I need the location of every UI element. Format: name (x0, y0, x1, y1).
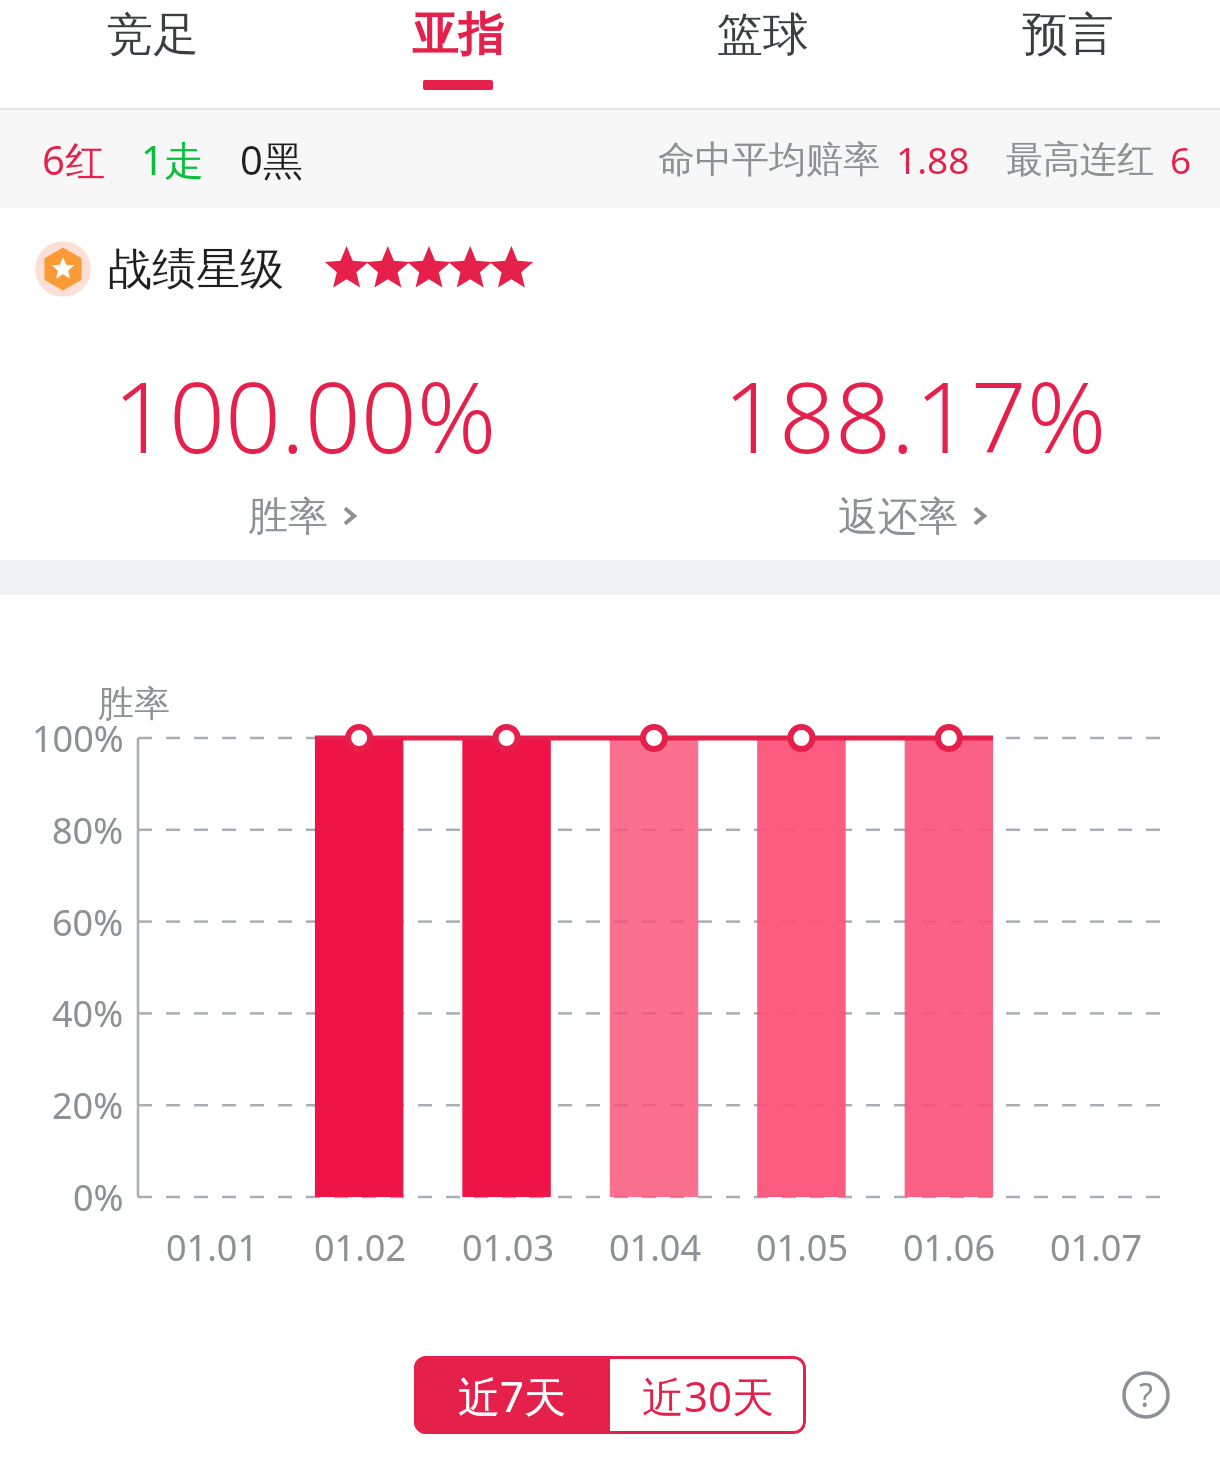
staticText: 100% (32, 714, 124, 763)
staticText: 20% (52, 1081, 124, 1130)
staticText: 竞足 (107, 6, 199, 64)
staticText: 0% (73, 1173, 124, 1222)
staticText: 胜率 (248, 491, 328, 541)
staticText: 80% (52, 806, 124, 855)
staticText: 188.17% (723, 348, 1107, 481)
staticText: 01.06 (903, 1223, 996, 1272)
staticText: 01.07 (1050, 1223, 1143, 1272)
staticText: 6红 (42, 132, 105, 187)
button[interactable]: 188.17% (610, 330, 1220, 560)
staticText: 40% (52, 989, 124, 1038)
staticText: 战绩星级 (108, 242, 284, 297)
staticText: 命中平均赔率 (658, 136, 880, 183)
staticText: 01.02 (314, 1223, 407, 1272)
staticText: 60% (52, 898, 124, 947)
button[interactable]: 近7天 (414, 1356, 610, 1434)
staticText: 近30天 (642, 1367, 775, 1424)
button[interactable]: 100.00% (0, 330, 610, 560)
staticText: 篮球 (717, 6, 809, 64)
button[interactable]: 竞足 (0, 0, 305, 108)
staticText: 最高连红 (1006, 136, 1154, 183)
staticText: 01.01 (166, 1223, 259, 1272)
staticText: 0黑 (240, 132, 303, 187)
button[interactable]: 亚指 (305, 0, 610, 108)
staticText: 01.03 (462, 1223, 555, 1272)
staticText: ? (1139, 1373, 1153, 1417)
staticText: 01.05 (756, 1223, 849, 1272)
staticText: 6 (1170, 134, 1192, 184)
staticText: 1.88 (896, 134, 970, 184)
staticText: 01.04 (609, 1223, 702, 1272)
button[interactable]: 篮球 (610, 0, 915, 108)
staticText: 胜率 (98, 681, 170, 726)
button[interactable]: Help (1122, 1371, 1170, 1419)
staticText: 近7天 (458, 1367, 567, 1424)
button[interactable]: 近30天 (610, 1356, 806, 1434)
staticText: 1走 (141, 132, 204, 187)
staticText: 100.00% (113, 348, 497, 481)
staticText: 亚指 (412, 6, 504, 64)
staticText: 返还率 (838, 491, 958, 541)
staticText: 预言 (1022, 6, 1114, 64)
button[interactable]: 预言 (915, 0, 1220, 108)
